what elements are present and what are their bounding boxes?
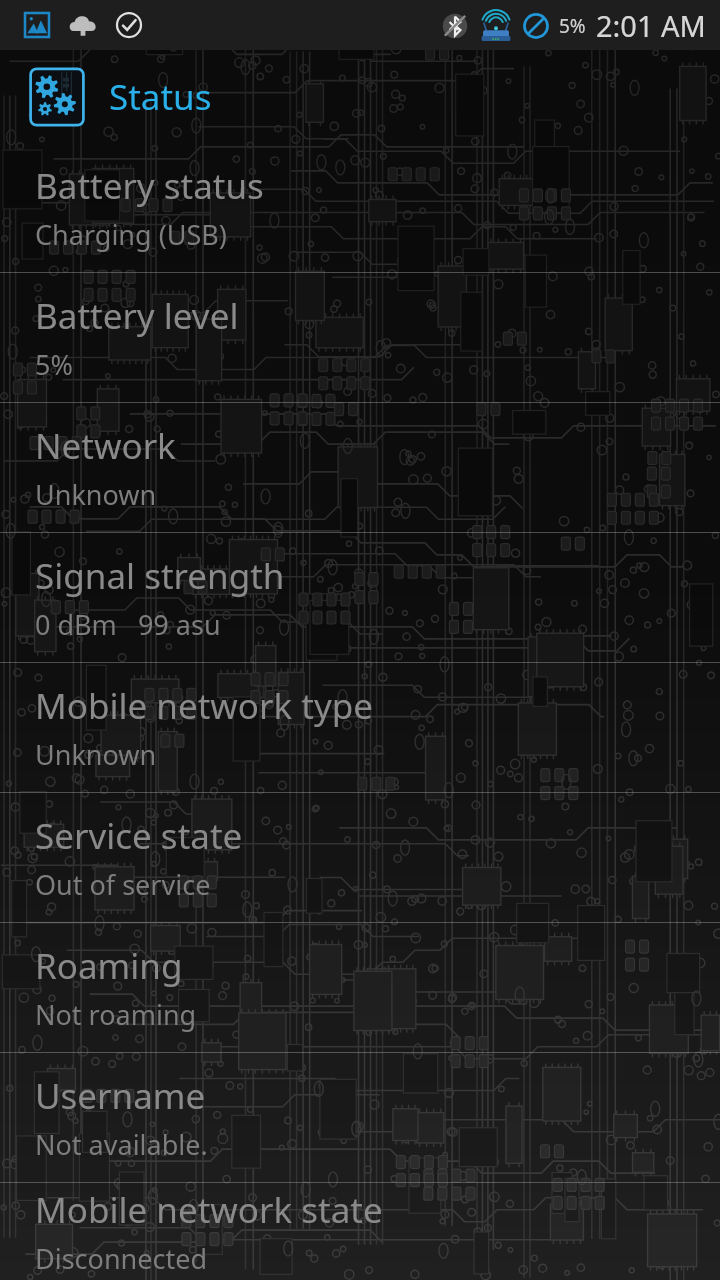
button[interactable]: Roaming [0, 923, 720, 1052]
button[interactable]: Battery level [0, 273, 720, 402]
staticText: Not available. [35, 1126, 208, 1163]
button[interactable]: Signal strength [0, 533, 720, 662]
button[interactable]: Network [0, 403, 720, 532]
staticText: Network [35, 422, 176, 470]
staticText: Battery level [35, 292, 239, 340]
staticText: 5% [559, 13, 586, 39]
staticText: Service state [35, 812, 243, 860]
other: Status app icon [27, 67, 87, 127]
button[interactable]: Mobile network state [0, 1183, 720, 1280]
staticText: 5% [35, 346, 73, 383]
staticText: Disconnected [35, 1240, 208, 1277]
staticText: 0 dBm 99 asu [35, 606, 221, 643]
staticText: Charging (USB) [35, 216, 227, 253]
button[interactable]: Service state [0, 793, 720, 922]
staticText: Status [109, 73, 212, 121]
staticText: Roaming [35, 942, 183, 990]
button[interactable]: Battery status [0, 143, 720, 272]
staticText: Not roaming [35, 996, 197, 1033]
button[interactable]: Status app icon [27, 67, 212, 127]
staticText: Unknown [35, 476, 157, 513]
staticText: Mobile network type [35, 682, 374, 730]
staticText: Battery status [35, 162, 264, 210]
staticText: 2:01 AM [596, 6, 706, 45]
staticText: Username [35, 1072, 206, 1120]
staticText: Out of service [35, 866, 211, 903]
staticText: Unknown [35, 736, 157, 773]
staticText: Mobile network state [35, 1186, 383, 1234]
button[interactable]: Username [0, 1053, 720, 1182]
button[interactable]: Mobile network type [0, 663, 720, 792]
staticText: Signal strength [35, 552, 285, 600]
